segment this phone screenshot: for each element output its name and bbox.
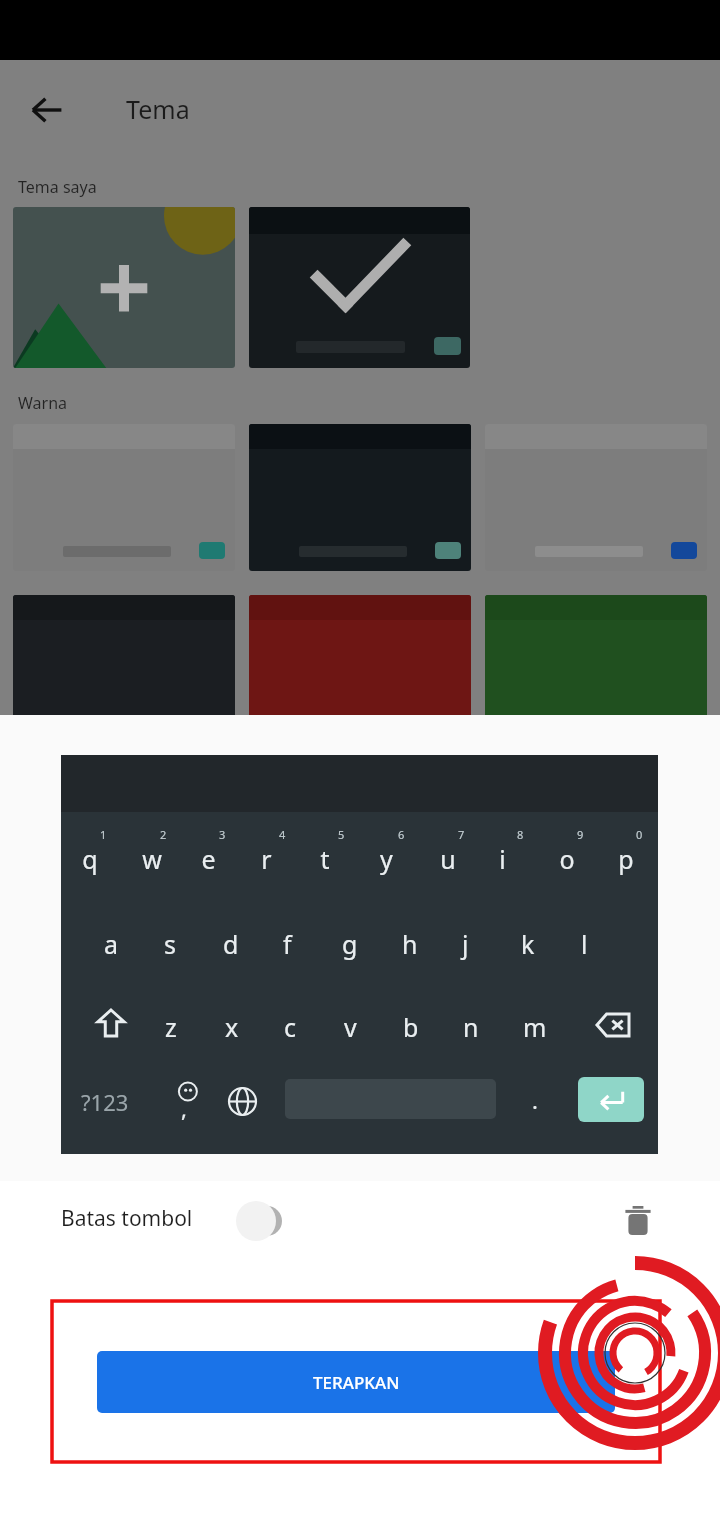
staticText: n [463,1010,479,1044]
button[interactable] [249,207,470,368]
button[interactable] [249,424,471,571]
staticText: 5 [338,827,345,842]
button[interactable] [485,595,707,742]
staticText: f [283,927,292,961]
staticText: 8 [517,827,524,842]
button[interactable]: Language [221,1080,263,1122]
staticText: 2 [160,827,167,842]
staticText: h [402,927,418,961]
staticText: v [344,1010,357,1044]
staticText: 0 [636,827,643,842]
staticText: s [164,927,176,961]
button[interactable]: Shift [86,998,136,1048]
staticText: 3 [219,827,226,842]
button[interactable]: Delete [614,1197,662,1245]
staticText: e [201,842,216,876]
staticText: m [523,1010,547,1044]
button[interactable]: . [532,1085,538,1115]
button[interactable]: Back [21,84,73,136]
staticText: o [559,842,575,876]
staticText: q [82,842,98,876]
button[interactable]: Enter [578,1077,644,1122]
staticText: w [142,842,162,876]
button[interactable]: ?123 [81,1087,129,1117]
button[interactable] [249,595,471,742]
staticText: j [462,927,469,961]
button[interactable]: TERAPKAN [97,1351,615,1413]
staticText: 1 [100,827,107,842]
staticText: p [618,842,634,876]
staticText: 9 [577,827,584,842]
staticText: Tema [126,92,190,126]
button[interactable] [13,207,235,368]
staticText: 6 [398,827,405,842]
staticText: c [284,1010,297,1044]
staticText: 7 [458,827,465,842]
staticText: TERAPKAN [313,1371,400,1394]
staticText: b [403,1010,419,1044]
staticText: t [320,842,330,876]
button[interactable]: Backspace [586,998,640,1052]
staticText: Batas tombol [61,1204,193,1233]
staticText: l [581,927,588,961]
button[interactable]: Emoji [165,1077,209,1121]
staticText: d [223,927,239,961]
staticText: i [499,842,506,876]
button[interactable]: Batas tombol [226,1197,296,1245]
staticText: u [440,842,456,876]
button[interactable] [13,424,235,571]
staticText: Tema saya [18,176,97,198]
staticText: r [261,842,272,876]
staticText: 4 [279,827,286,842]
staticText: y [380,842,393,876]
button[interactable] [485,424,707,571]
button[interactable] [13,595,235,742]
staticText: x [225,1010,239,1044]
staticText: Warna [18,392,68,414]
staticText: k [521,927,535,961]
staticText: g [342,927,358,961]
staticText: z [165,1010,177,1044]
staticText: a [104,927,119,961]
staticText: , [181,1093,187,1123]
